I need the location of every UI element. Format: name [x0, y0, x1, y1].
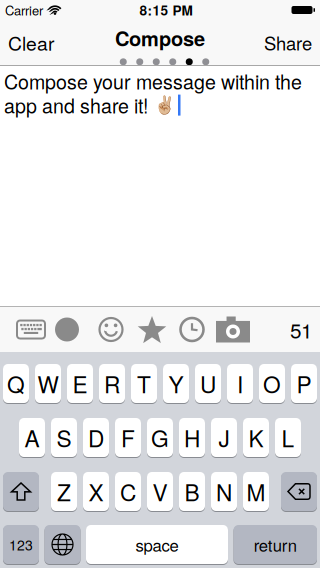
- staticText: D: [88, 421, 104, 454]
- button[interactable]: E: [67, 364, 93, 403]
- staticText: R: [104, 367, 120, 400]
- staticText: Share: [264, 29, 312, 56]
- button[interactable]: Q: [3, 364, 29, 403]
- staticText: C: [120, 475, 136, 508]
- staticText: X: [88, 475, 103, 508]
- staticText: M: [246, 475, 265, 508]
- staticText: Clear: [8, 29, 54, 56]
- button[interactable]: O: [259, 364, 285, 403]
- button[interactable]: H: [179, 418, 205, 457]
- button[interactable]: J: [211, 418, 237, 457]
- button[interactable]: W: [35, 364, 61, 403]
- button[interactable]: Keyboard: [15, 319, 46, 340]
- staticText: 8:15 PM: [139, 0, 192, 20]
- staticText: Q: [7, 367, 25, 400]
- button[interactable]: B: [179, 472, 205, 511]
- staticText: Compose: [115, 24, 205, 52]
- staticText: L: [281, 421, 294, 454]
- button[interactable]: Share: [264, 29, 312, 56]
- staticText: B: [184, 475, 199, 508]
- button[interactable]: Delete: [281, 472, 317, 511]
- staticText: U: [200, 367, 216, 400]
- staticText: E: [72, 367, 87, 400]
- staticText: 123: [9, 534, 33, 554]
- staticText: Y: [168, 367, 183, 400]
- button[interactable]: K: [243, 418, 269, 457]
- button[interactable]: R: [99, 364, 125, 403]
- staticText: J: [218, 421, 229, 454]
- button[interactable]: G: [147, 418, 173, 457]
- staticText: G: [151, 421, 169, 454]
- button[interactable]: S: [51, 418, 77, 457]
- button[interactable]: Y: [163, 364, 189, 403]
- staticText: space: [135, 533, 178, 556]
- button[interactable]: D: [83, 418, 109, 457]
- button[interactable]: F: [115, 418, 141, 457]
- staticText: 51: [290, 315, 312, 344]
- button[interactable]: T: [131, 364, 157, 403]
- button[interactable]: Z: [51, 472, 77, 511]
- staticText: W: [37, 367, 58, 400]
- staticText: F: [121, 421, 135, 454]
- button[interactable]: Space: [86, 525, 228, 564]
- button[interactable]: Camera: [216, 317, 249, 342]
- button[interactable]: Emoji: [98, 317, 123, 342]
- button[interactable]: History: [180, 317, 204, 341]
- button[interactable]: X: [83, 472, 109, 511]
- staticText: I: [237, 367, 243, 400]
- button[interactable]: N: [211, 472, 237, 511]
- button[interactable]: M: [243, 472, 269, 511]
- button[interactable]: I: [227, 364, 253, 403]
- button[interactable]: Favorites: [136, 314, 167, 344]
- staticText: K: [248, 421, 263, 454]
- button[interactable]: A: [19, 418, 45, 457]
- button[interactable]: Clear: [8, 29, 54, 56]
- button[interactable]: V: [147, 472, 173, 511]
- button[interactable]: Numbers: [3, 525, 39, 564]
- staticText: return: [254, 533, 297, 556]
- staticText: Compose your message within the: [4, 67, 302, 95]
- staticText: A: [24, 421, 39, 454]
- staticText: T: [137, 367, 151, 400]
- button[interactable]: Next keyboard: [44, 525, 80, 564]
- staticText: N: [216, 475, 232, 508]
- button[interactable]: Recents: [55, 317, 79, 341]
- staticText: Carrier: [5, 1, 43, 19]
- staticText: Z: [57, 475, 71, 508]
- button[interactable]: Shift: [3, 472, 39, 511]
- button[interactable]: P: [291, 364, 317, 403]
- button[interactable]: L: [275, 418, 301, 457]
- button[interactable]: U: [195, 364, 221, 403]
- button[interactable]: Return: [233, 525, 317, 564]
- staticText: H: [184, 421, 200, 454]
- button[interactable]: C: [115, 472, 141, 511]
- staticText: S: [56, 421, 71, 454]
- staticText: app and share it!: [4, 91, 148, 119]
- staticText: ✌🏼: [154, 95, 176, 115]
- staticText: P: [296, 367, 311, 400]
- staticText: V: [152, 475, 167, 508]
- staticText: O: [263, 367, 281, 400]
